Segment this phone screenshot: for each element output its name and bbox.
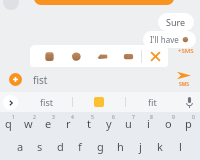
staticText: h bbox=[117, 139, 124, 154]
button[interactable] bbox=[34, 0, 174, 5]
button[interactable]: s bbox=[30, 135, 50, 158]
staticText: k bbox=[157, 139, 163, 154]
button[interactable]: o bbox=[160, 112, 180, 135]
staticText: 5 bbox=[91, 114, 94, 121]
staticText: 7 bbox=[132, 114, 135, 121]
staticText: 3 bbox=[52, 114, 55, 121]
staticText: y bbox=[106, 116, 112, 131]
button[interactable]: Sure bbox=[158, 13, 194, 31]
staticText: a bbox=[17, 139, 24, 154]
button[interactable]: Send SMS bbox=[168, 67, 200, 92]
staticText: SMS bbox=[179, 81, 190, 88]
staticText: 4 bbox=[71, 114, 74, 121]
staticText: 8 bbox=[150, 114, 153, 121]
button[interactable]: p bbox=[180, 112, 200, 135]
staticText: 9 bbox=[172, 114, 175, 121]
staticText: d bbox=[57, 139, 64, 154]
button[interactable]: a bbox=[10, 135, 30, 158]
button[interactable] bbox=[115, 45, 141, 67]
button[interactable]: Add attachment bbox=[9, 73, 22, 86]
button[interactable]: t bbox=[80, 112, 100, 135]
button[interactable]: fist bbox=[20, 92, 72, 112]
staticText: fist bbox=[40, 96, 53, 108]
staticText: fit bbox=[148, 96, 157, 108]
button[interactable]: e bbox=[40, 112, 60, 135]
staticText: s bbox=[37, 139, 43, 154]
button[interactable]: k bbox=[150, 135, 170, 158]
button[interactable]: j bbox=[130, 135, 150, 158]
staticText: +SMS bbox=[178, 47, 194, 55]
staticText: u bbox=[125, 116, 132, 131]
button[interactable]: q bbox=[0, 112, 20, 135]
button[interactable] bbox=[89, 45, 115, 67]
button[interactable]: r bbox=[60, 112, 80, 135]
staticText: o bbox=[165, 116, 172, 131]
staticText: 6 bbox=[112, 114, 115, 121]
staticText: e bbox=[45, 116, 52, 131]
button[interactable] bbox=[73, 92, 125, 112]
staticText: t bbox=[87, 116, 91, 131]
button[interactable]: u bbox=[120, 112, 140, 135]
button[interactable]: i bbox=[140, 112, 160, 135]
staticText: f bbox=[78, 139, 82, 154]
staticText: l bbox=[179, 139, 182, 154]
staticText: Sure bbox=[166, 16, 186, 28]
staticText: fist bbox=[33, 73, 48, 87]
button[interactable]: f bbox=[70, 135, 90, 158]
button[interactable]: fit bbox=[126, 92, 178, 112]
staticText: i bbox=[147, 116, 150, 131]
button[interactable]: w bbox=[20, 112, 40, 135]
button[interactable]: fist bbox=[33, 67, 168, 92]
staticText: j bbox=[139, 139, 142, 154]
staticText: w bbox=[24, 116, 33, 131]
staticText: p bbox=[185, 116, 192, 131]
button[interactable] bbox=[63, 45, 89, 67]
button[interactable]: More suggestions bbox=[0, 92, 20, 112]
staticText: 0 bbox=[192, 114, 195, 121]
button[interactable]: y bbox=[100, 112, 120, 135]
staticText: I'll have bbox=[150, 34, 179, 45]
button[interactable]: I'll have bbox=[143, 31, 196, 48]
button[interactable]: d bbox=[50, 135, 70, 158]
staticText: g bbox=[97, 139, 104, 154]
staticText: 2 bbox=[33, 114, 36, 121]
button[interactable]: g bbox=[90, 135, 110, 158]
staticText: 1 bbox=[12, 114, 15, 121]
button[interactable] bbox=[36, 45, 63, 67]
button[interactable]: h bbox=[110, 135, 130, 158]
button[interactable]: Close emoji suggestions bbox=[142, 45, 168, 67]
staticText: r bbox=[66, 116, 71, 131]
button[interactable]: l bbox=[170, 135, 190, 158]
button[interactable]: Voice input bbox=[178, 92, 200, 112]
staticText: q bbox=[5, 116, 12, 131]
